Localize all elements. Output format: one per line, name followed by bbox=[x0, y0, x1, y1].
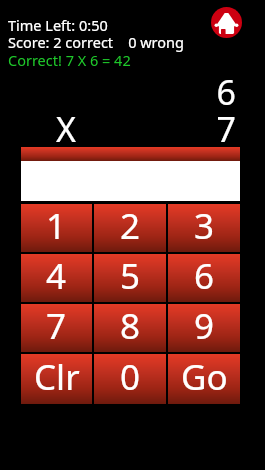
staticText: 9 bbox=[194, 302, 215, 350]
button[interactable]: Home bbox=[211, 7, 242, 38]
button[interactable]: 3 bbox=[168, 204, 240, 252]
button[interactable]: 0 bbox=[94, 354, 166, 404]
staticText: 3 bbox=[194, 202, 215, 250]
button[interactable]: Clr bbox=[21, 354, 92, 404]
staticText: 6 bbox=[194, 252, 215, 300]
button[interactable]: 2 bbox=[94, 204, 166, 252]
staticText: Score: 2 correct 0 wrong bbox=[8, 32, 184, 52]
staticText: Time Left: 0:50 bbox=[8, 15, 108, 35]
button[interactable]: 1 bbox=[21, 204, 92, 252]
staticText: 2 bbox=[120, 202, 141, 250]
button[interactable]: 8 bbox=[94, 304, 166, 352]
button[interactable]: 6 bbox=[168, 254, 240, 302]
button[interactable]: 5 bbox=[94, 254, 166, 302]
button[interactable]: 7 bbox=[21, 304, 92, 352]
staticText: Clr bbox=[34, 353, 80, 401]
staticText: 5 bbox=[120, 252, 141, 300]
staticText: 7 bbox=[0, 106, 236, 152]
staticText: 0 bbox=[120, 353, 141, 401]
staticText: X bbox=[56, 106, 76, 152]
button[interactable]: Go bbox=[168, 354, 240, 404]
staticText: 7 bbox=[46, 302, 67, 350]
staticText: Go bbox=[181, 353, 228, 401]
staticText: 6 bbox=[0, 69, 236, 115]
staticText: 8 bbox=[120, 302, 141, 350]
staticText: 4 bbox=[46, 252, 67, 300]
staticText: 1 bbox=[46, 202, 67, 250]
button[interactable]: 4 bbox=[21, 254, 92, 302]
staticText: Correct! 7 X 6 = 42 bbox=[8, 50, 131, 70]
button[interactable]: 9 bbox=[168, 304, 240, 352]
